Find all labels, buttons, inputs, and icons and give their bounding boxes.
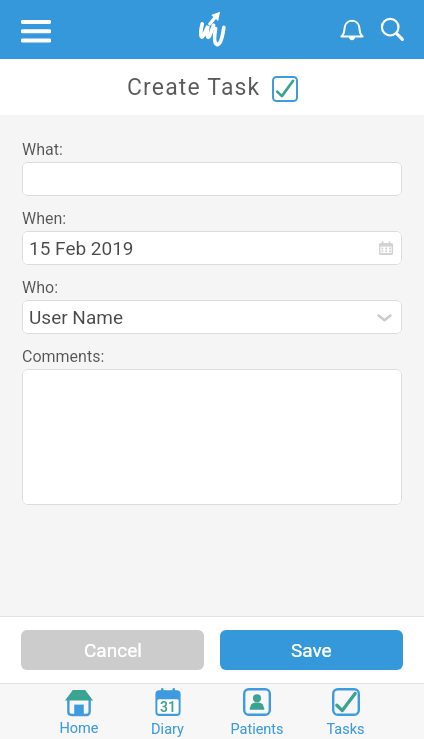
button[interactable]: 31 <box>123 684 212 739</box>
button[interactable]: 15 Feb 2019 <box>22 231 402 265</box>
button[interactable]: Tasks <box>301 684 390 739</box>
staticText: Save <box>291 639 332 661</box>
button[interactable]: Home <box>34 684 123 739</box>
button[interactable]: Save <box>220 630 403 670</box>
button[interactable] <box>22 369 402 505</box>
staticText: Comments: <box>22 347 105 366</box>
staticText: Who: <box>22 278 59 297</box>
button[interactable]: User Name <box>22 300 402 334</box>
button[interactable] <box>22 162 402 196</box>
staticText: When: <box>22 209 67 228</box>
staticText: Tasks <box>326 721 365 738</box>
staticText: Create Task <box>127 74 261 101</box>
staticText: User Name <box>29 306 123 328</box>
staticText: Cancel <box>84 639 142 661</box>
button[interactable]: Task type <box>272 76 298 102</box>
staticText: What: <box>22 140 63 159</box>
staticText: Patients <box>230 721 284 738</box>
button[interactable]: Search <box>372 0 412 59</box>
button[interactable]: Cancel <box>21 630 204 670</box>
button[interactable]: Notifications <box>332 0 372 59</box>
button[interactable]: Patients <box>212 684 301 739</box>
staticText: Home <box>59 720 99 737</box>
staticText: Diary <box>151 721 184 738</box>
button[interactable]: Menu <box>10 0 62 59</box>
staticText: 15 Feb 2019 <box>29 237 134 259</box>
staticText: 31 <box>160 699 176 715</box>
